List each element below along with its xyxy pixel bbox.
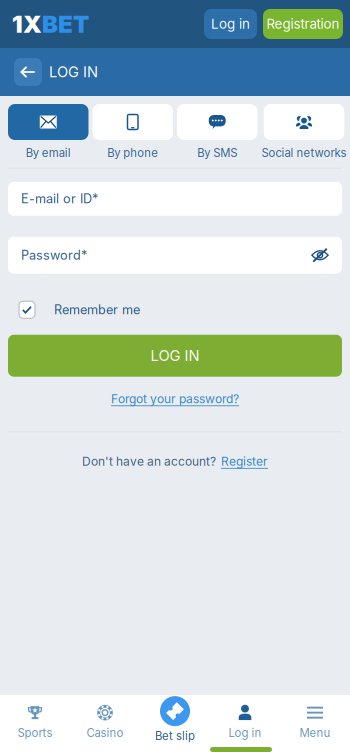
staticText: Bet slip bbox=[155, 729, 195, 743]
staticText: Register bbox=[221, 454, 268, 469]
button[interactable]: Casino bbox=[70, 692, 140, 752]
button[interactable]: Back bbox=[14, 58, 42, 86]
button[interactable]: Log in bbox=[210, 692, 280, 752]
button[interactable]: Sports bbox=[0, 692, 70, 752]
staticText: E-mail or ID* bbox=[21, 191, 98, 206]
button[interactable]: Menu bbox=[280, 692, 350, 752]
staticText: Casino bbox=[86, 726, 123, 740]
staticText: Forgot your password? bbox=[111, 392, 239, 406]
staticText: LOG IN bbox=[150, 347, 199, 364]
staticText: By email bbox=[26, 146, 71, 160]
button[interactable]: LOG IN bbox=[8, 335, 342, 377]
button[interactable]: Remember me bbox=[0, 297, 350, 323]
button[interactable]: Register bbox=[216, 450, 268, 473]
staticText: Don't have an account? bbox=[82, 454, 216, 469]
staticText: Remember me bbox=[54, 302, 140, 317]
button[interactable]: Social networks bbox=[261, 104, 342, 160]
staticText: LOG IN bbox=[49, 63, 98, 81]
button[interactable]: By SMS bbox=[177, 104, 257, 160]
staticText: Social networks bbox=[261, 146, 346, 160]
staticText: Registration bbox=[266, 16, 339, 32]
button[interactable]: Show password bbox=[311, 241, 342, 270]
button[interactable]: Forgot your password? bbox=[103, 386, 247, 412]
staticText: By SMS bbox=[197, 146, 237, 160]
button[interactable]: Log in bbox=[204, 9, 257, 39]
staticText: Sports bbox=[17, 726, 52, 740]
staticText: Password* bbox=[21, 247, 87, 263]
staticText: By phone bbox=[107, 146, 158, 160]
staticText: 1X bbox=[12, 9, 42, 38]
staticText: Log in bbox=[228, 726, 261, 740]
button[interactable]: Bet slip bbox=[140, 689, 210, 752]
button[interactable]: By email bbox=[8, 104, 88, 160]
staticText: Log in bbox=[211, 16, 250, 32]
button[interactable]: By phone bbox=[92, 104, 173, 160]
button[interactable]: Registration bbox=[263, 9, 343, 39]
staticText: BET bbox=[42, 9, 89, 38]
staticText: Menu bbox=[299, 726, 330, 740]
